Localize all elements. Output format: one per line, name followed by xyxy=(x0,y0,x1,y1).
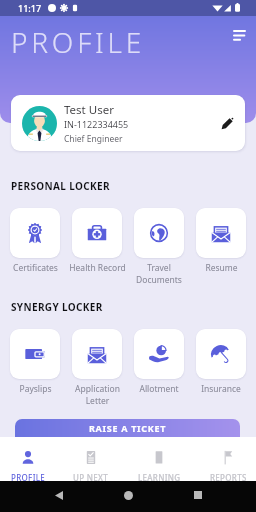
button[interactable]: LEARNING xyxy=(129,437,189,481)
button[interactable]: UP NEXT xyxy=(61,437,121,481)
staticText: RAISE A TICKET xyxy=(89,422,167,434)
button[interactable] xyxy=(134,208,184,258)
button[interactable] xyxy=(10,208,60,258)
staticText: Health Record xyxy=(69,262,126,274)
button[interactable] xyxy=(134,329,184,379)
staticText: Insurance xyxy=(201,383,241,395)
staticText: LEARNING xyxy=(138,472,181,481)
button[interactable] xyxy=(72,208,122,258)
button[interactable] xyxy=(10,329,60,379)
button[interactable] xyxy=(196,329,246,379)
button[interactable]: RAISE A TICKET xyxy=(15,419,240,437)
staticText: Payslips xyxy=(19,383,52,395)
button[interactable]: PROFILE xyxy=(0,437,58,481)
button[interactable]: REPORTS xyxy=(198,437,256,481)
staticText: PROFILE xyxy=(11,23,146,61)
button[interactable]: Menu xyxy=(228,24,250,46)
staticText: Test User xyxy=(64,102,114,118)
staticText: Resume xyxy=(205,262,238,274)
staticText: Certificates xyxy=(13,262,58,274)
staticText: Travel Documents xyxy=(136,262,182,286)
button[interactable] xyxy=(72,329,122,379)
staticText: SYNERGY LOCKER xyxy=(11,300,103,314)
staticText: UP NEXT xyxy=(73,472,109,481)
button[interactable]: Test User xyxy=(11,95,245,151)
staticText: IN-1122334455 xyxy=(64,118,129,130)
button[interactable]: Back xyxy=(48,484,70,506)
staticText: Chief Engineer xyxy=(64,133,123,145)
button[interactable]: Recents xyxy=(187,484,209,506)
staticText: PERSONAL LOCKER xyxy=(11,179,110,193)
button[interactable] xyxy=(196,208,246,258)
button[interactable]: Home xyxy=(117,484,139,506)
staticText: REPORTS xyxy=(210,472,247,481)
staticText: Application Letter xyxy=(75,383,120,407)
staticText: Allotment xyxy=(139,383,179,395)
staticText: PROFILE xyxy=(11,472,46,481)
staticText: 11:17 xyxy=(18,2,42,14)
button[interactable]: Edit profile xyxy=(215,111,239,135)
